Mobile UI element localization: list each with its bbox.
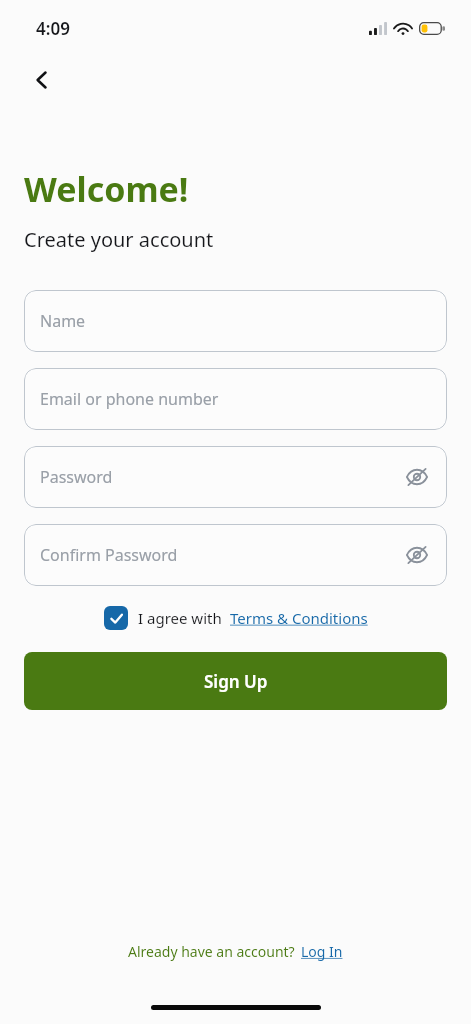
button[interactable]: I agree checkbox: [104, 606, 128, 630]
staticText: Password: [40, 466, 113, 488]
staticText: Already have an account?: [128, 942, 295, 961]
staticText: Email or phone number: [40, 388, 219, 410]
button[interactable]: Sign Up: [24, 652, 447, 710]
button[interactable]: Password: [24, 446, 447, 508]
button[interactable]: Name: [24, 290, 447, 352]
staticText: I agree with: [138, 608, 222, 628]
button[interactable]: Log In: [301, 942, 343, 961]
staticText: 4:09: [36, 17, 70, 40]
staticText: Sign Up: [204, 670, 268, 693]
button[interactable]: Show password: [399, 459, 435, 495]
button[interactable]: Email or phone number: [24, 368, 447, 430]
button[interactable]: Back: [18, 56, 66, 104]
button[interactable]: Show password: [399, 537, 435, 573]
staticText: Log In: [301, 942, 343, 961]
staticText: Confirm Password: [40, 544, 178, 566]
staticText: Welcome!: [24, 166, 189, 212]
staticText: Create your account: [24, 226, 214, 253]
button[interactable]: Confirm Password: [24, 524, 447, 586]
staticText: Terms & Conditions: [230, 608, 368, 628]
button[interactable]: Terms & Conditions: [230, 608, 368, 628]
staticText: Name: [40, 310, 86, 332]
